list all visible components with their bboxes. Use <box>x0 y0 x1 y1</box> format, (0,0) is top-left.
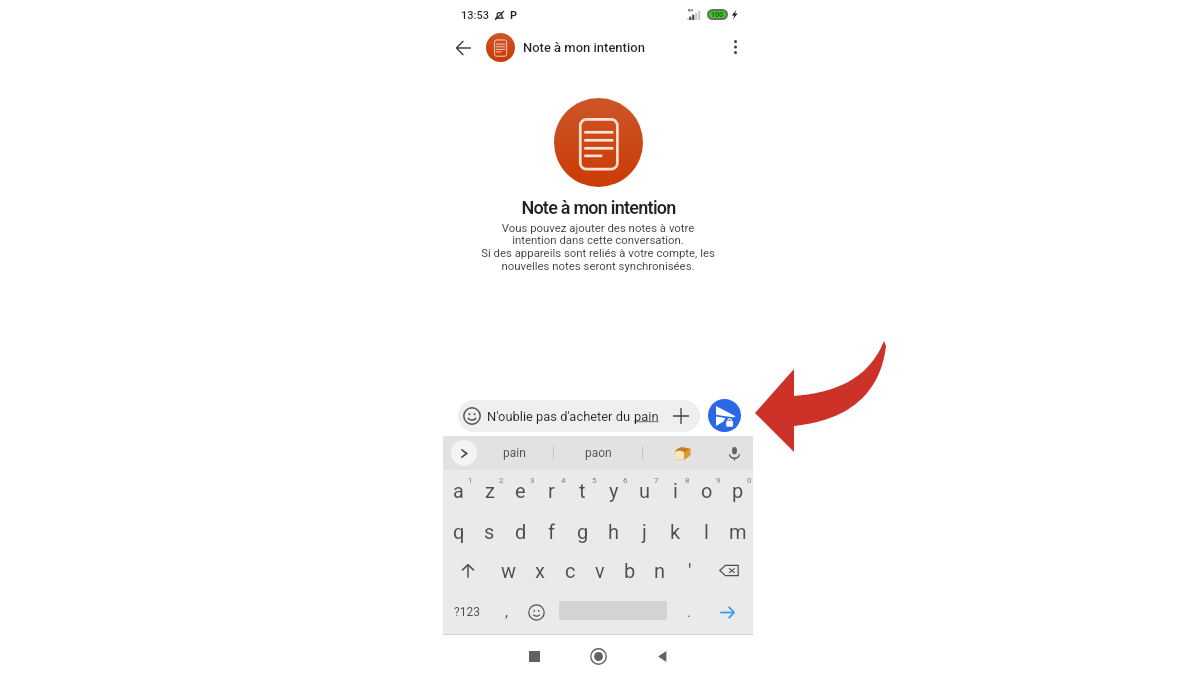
button[interactable]: Ajouter <box>670 405 692 427</box>
button[interactable]: b <box>615 551 645 590</box>
button[interactable]: k <box>660 511 691 551</box>
staticText: f <box>548 520 555 543</box>
button[interactable]: c <box>555 551 585 590</box>
button[interactable]: o <box>691 470 722 511</box>
staticText: s <box>484 520 495 543</box>
staticText: P <box>510 9 518 22</box>
staticText: 13:53 <box>461 9 489 22</box>
staticText: x <box>535 559 545 582</box>
button[interactable]: t <box>567 470 598 511</box>
button[interactable]: e <box>505 470 536 511</box>
staticText: o <box>701 479 713 502</box>
staticText: Vous pouvez ajouter des notes à votre in… <box>481 221 715 273</box>
button[interactable]: s <box>474 511 505 551</box>
button[interactable]: q <box>443 511 474 551</box>
button[interactable]: d <box>505 511 536 551</box>
staticText: n <box>654 559 666 582</box>
staticText: k <box>670 520 681 543</box>
staticText: w <box>501 559 517 582</box>
staticText: , <box>505 603 508 621</box>
button[interactable]: Accueil <box>566 637 630 675</box>
staticText: r <box>548 479 555 502</box>
button[interactable]: N'oublie pas d'acheter du <box>458 400 700 432</box>
button[interactable]: f <box>536 511 567 551</box>
staticText: 4 <box>561 476 566 485</box>
staticText: g <box>577 520 589 543</box>
staticText: Note à mon intention <box>523 40 645 55</box>
staticText: 6 <box>623 476 628 485</box>
staticText: v <box>595 559 605 582</box>
button[interactable]: Retour <box>450 35 476 61</box>
button[interactable]: y <box>598 470 629 511</box>
button[interactable]: r <box>536 470 567 511</box>
staticText: e <box>515 479 526 502</box>
button[interactable]: Plus de suggestions <box>451 440 477 466</box>
button[interactable]: Envoyer <box>708 399 741 432</box>
button[interactable]: m <box>722 511 753 551</box>
button[interactable]: u <box>629 470 660 511</box>
staticText: pain <box>634 409 659 424</box>
button[interactable]: Majuscule <box>443 551 493 590</box>
button[interactable]: Retour <box>630 637 694 675</box>
staticText: 7 <box>654 476 659 485</box>
staticText: i <box>673 479 678 502</box>
staticText: Note à mon intention <box>521 197 676 218</box>
button[interactable]: Plus d'options <box>723 35 747 59</box>
button[interactable]: p <box>722 470 753 511</box>
staticText: q <box>453 520 465 543</box>
button[interactable]: pain <box>480 436 549 470</box>
staticText: N'oublie pas d'acheter du <box>487 409 634 424</box>
staticText: y <box>609 479 619 502</box>
staticText: m <box>729 520 747 543</box>
staticText: t <box>579 479 586 502</box>
staticText: h <box>608 520 620 543</box>
staticText: j <box>642 520 647 543</box>
button[interactable]: Micro <box>724 443 744 463</box>
button[interactable]: n <box>645 551 675 590</box>
button[interactable]: x <box>524 551 555 590</box>
button[interactable]: z <box>474 470 505 511</box>
button[interactable]: paon <box>554 436 642 470</box>
button[interactable]: Emoji pain <box>674 445 691 462</box>
button[interactable]: g <box>567 511 598 551</box>
staticText: 8 <box>685 476 690 485</box>
button[interactable]: ?123 <box>444 590 489 634</box>
button[interactable]: j <box>629 511 660 551</box>
button[interactable]: i <box>660 470 691 511</box>
staticText: 2 <box>499 476 504 485</box>
staticText: ?123 <box>454 605 480 619</box>
staticText: z <box>485 479 495 502</box>
staticText: u <box>639 479 651 502</box>
staticText: paon <box>585 446 612 460</box>
button[interactable]: l <box>691 511 722 551</box>
staticText: l <box>704 520 709 543</box>
staticText: 100 <box>711 11 724 18</box>
button[interactable]: Entrée <box>707 590 747 634</box>
button[interactable]: w <box>493 551 524 590</box>
button[interactable]: Supprimer <box>705 551 753 590</box>
button[interactable]: , <box>491 590 521 634</box>
staticText: p <box>732 479 744 502</box>
button[interactable]: a <box>443 470 474 511</box>
button[interactable]: v <box>585 551 615 590</box>
button[interactable]: Applications récentes <box>502 637 566 675</box>
staticText: b <box>624 559 636 582</box>
button[interactable]: h <box>598 511 629 551</box>
staticText: 1 <box>468 476 473 485</box>
staticText: a <box>453 479 464 502</box>
staticText: . <box>687 603 691 621</box>
button[interactable]: ' <box>675 551 705 590</box>
staticText: 5 <box>592 476 597 485</box>
button[interactable]: Emoji <box>521 590 551 634</box>
staticText: 9 <box>716 476 721 485</box>
staticText: c <box>565 559 576 582</box>
staticText: pain <box>503 446 526 460</box>
staticText: ' <box>688 559 692 582</box>
button[interactable]: . <box>674 590 704 634</box>
staticText: 3 <box>530 476 535 485</box>
staticText: 0 <box>747 476 752 485</box>
staticText: d <box>515 520 527 543</box>
